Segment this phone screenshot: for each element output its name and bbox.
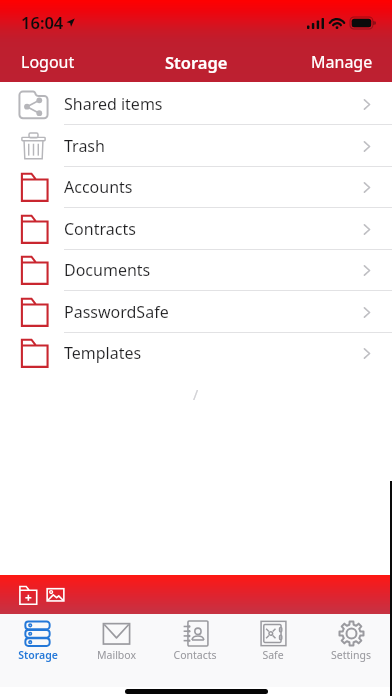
button[interactable]: Templates xyxy=(0,332,392,374)
button[interactable]: Shared items xyxy=(0,83,392,125)
button[interactable]: Upload photo xyxy=(41,578,69,612)
button[interactable]: Documents xyxy=(0,249,392,291)
button[interactable]: Storage xyxy=(0,620,77,666)
staticText: Templates xyxy=(64,342,142,364)
staticText: Contracts xyxy=(64,218,136,240)
staticText: Mailbox xyxy=(97,648,136,662)
button[interactable]: Accounts xyxy=(0,166,392,208)
staticText: Storage xyxy=(18,648,58,662)
button[interactable]: PasswordSafe xyxy=(0,291,392,333)
button[interactable]: Contracts xyxy=(0,208,392,250)
staticText: Documents xyxy=(64,259,151,281)
button[interactable]: Settings xyxy=(312,620,390,666)
button[interactable]: Contacts xyxy=(156,620,234,666)
button[interactable]: Mailbox xyxy=(77,620,156,666)
button[interactable]: Trash xyxy=(0,125,392,167)
staticText: / xyxy=(193,385,199,404)
staticText: Safe xyxy=(262,648,284,662)
staticText: PasswordSafe xyxy=(64,301,169,323)
staticText: Contacts xyxy=(173,648,217,662)
staticText: Storage xyxy=(165,51,228,73)
staticText: 16:04 xyxy=(21,11,64,33)
staticText: Settings xyxy=(331,648,371,662)
staticText: Shared items xyxy=(64,93,163,115)
button[interactable]: Logout xyxy=(8,45,88,79)
button[interactable]: Safe xyxy=(234,620,312,666)
button[interactable]: Manage xyxy=(298,45,386,79)
staticText: Logout xyxy=(21,51,75,73)
staticText: Trash xyxy=(64,135,105,157)
staticText: Accounts xyxy=(64,176,133,198)
button[interactable]: New folder xyxy=(13,578,41,612)
staticText: Manage xyxy=(311,51,373,73)
